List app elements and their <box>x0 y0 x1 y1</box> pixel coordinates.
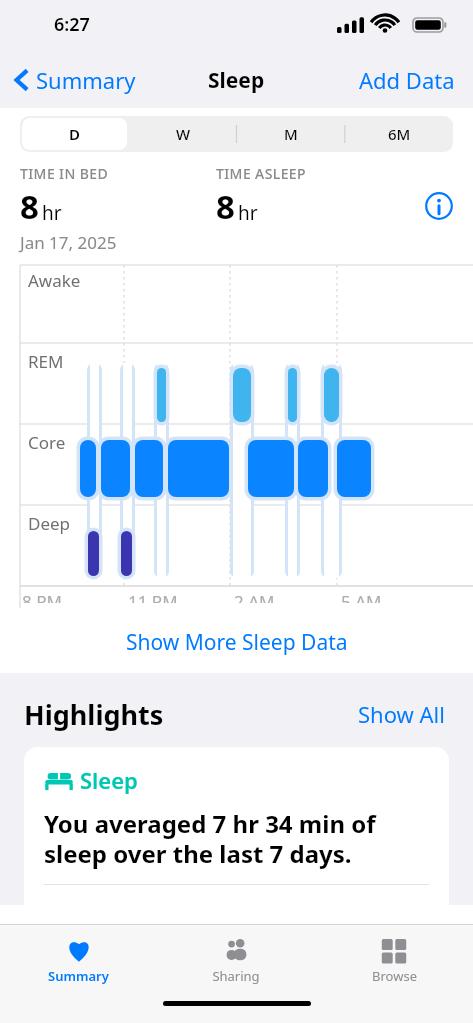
button[interactable]: M <box>239 118 343 150</box>
staticText: 6:27 <box>54 12 90 37</box>
button[interactable]: Show All <box>354 695 449 733</box>
button[interactable]: Show More Sleep Data <box>0 619 473 665</box>
button[interactable]: Sleep <box>24 747 449 905</box>
button[interactable]: Summary <box>10 61 140 99</box>
staticText: D <box>69 124 80 144</box>
staticText: REM <box>28 350 64 373</box>
button[interactable]: W <box>131 118 235 150</box>
staticText: Core <box>28 431 66 454</box>
staticText: 6M <box>388 124 411 144</box>
staticText: Highlights <box>24 696 164 733</box>
button[interactable]: 6M <box>347 118 451 150</box>
staticText: 2 AM <box>234 590 275 603</box>
button[interactable]: Summary <box>0 925 157 997</box>
staticText: M <box>284 124 298 144</box>
button[interactable]: Add Data <box>355 61 459 99</box>
staticText: Summary <box>48 967 109 985</box>
staticText: You averaged 7 hr 34 min of sleep over t… <box>44 807 429 870</box>
staticText: Browse <box>372 967 417 985</box>
staticText: Deep <box>28 512 71 535</box>
staticText: 5 AM <box>341 590 382 603</box>
staticText: 8 PM <box>22 590 62 603</box>
staticText: hr <box>238 200 258 226</box>
staticText: 11 PM <box>128 590 178 603</box>
staticText: Show More Sleep Data <box>126 628 348 657</box>
staticText: Show All <box>358 699 445 729</box>
staticText: hr <box>42 200 62 226</box>
staticText: Awake <box>28 269 81 292</box>
staticText: Sleep <box>80 765 138 795</box>
staticText: Summary <box>36 65 136 95</box>
staticText: Jan 17, 2025 <box>20 231 117 254</box>
staticText: 8 <box>20 184 39 229</box>
button[interactable]: Sharing <box>157 925 315 997</box>
staticText: Sleep <box>208 66 265 95</box>
staticText: W <box>176 124 191 144</box>
staticText: Add Data <box>359 65 455 95</box>
staticText: TIME IN BED <box>20 164 109 183</box>
button[interactable]: Browse <box>315 925 473 997</box>
staticText: 8 <box>216 184 235 229</box>
button[interactable]: D <box>22 118 127 150</box>
staticText: Sharing <box>212 967 260 985</box>
button[interactable]: Information <box>425 192 453 220</box>
staticText: TIME ASLEEP <box>216 164 306 183</box>
